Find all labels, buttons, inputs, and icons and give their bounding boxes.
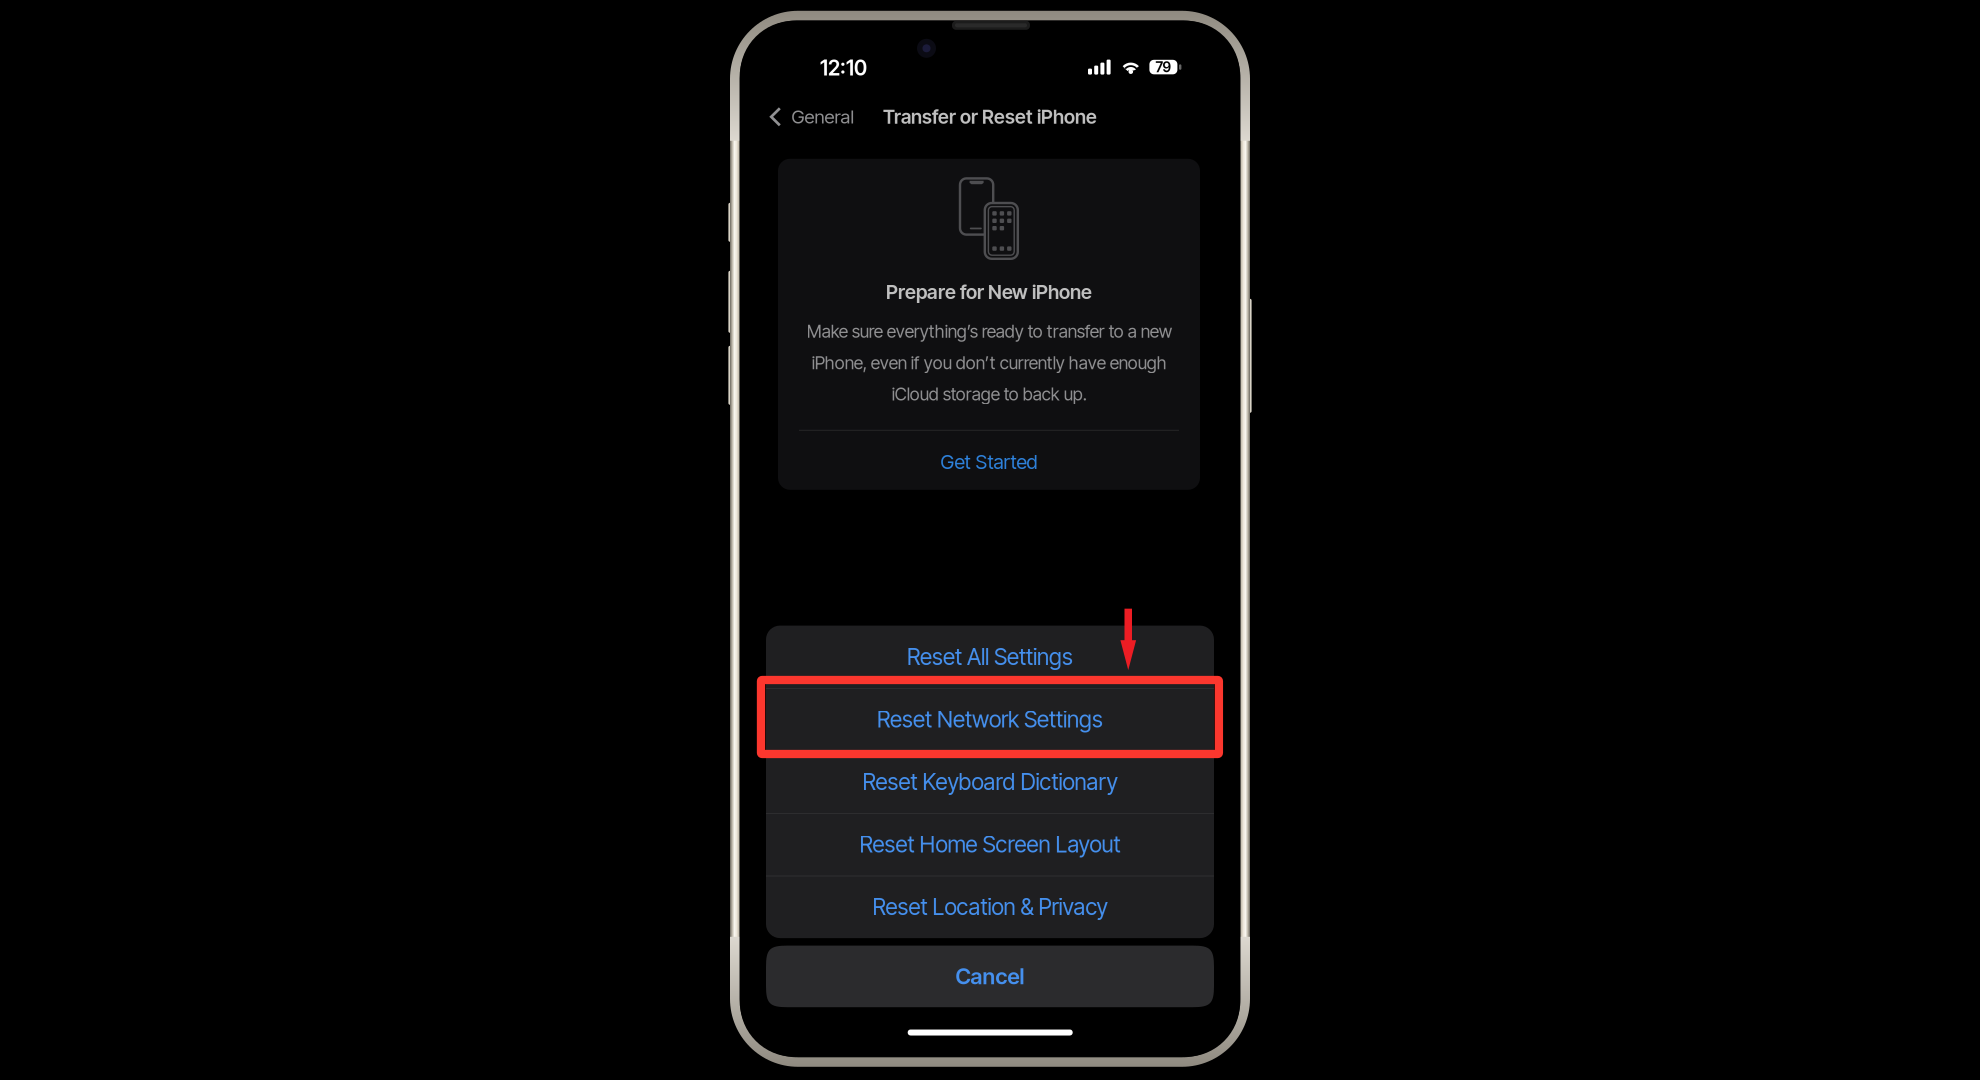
- staticText: Transfer or Reset iPhone: [883, 105, 1097, 128]
- staticText: General: [791, 105, 854, 128]
- staticText: Make sure everything’s ready to transfer…: [806, 321, 1171, 405]
- button[interactable]: Reset All Settings: [766, 626, 1214, 688]
- button[interactable]: Get Started: [778, 432, 1200, 492]
- staticText: Reset Network Settings: [877, 706, 1103, 733]
- staticText: Reset Home Screen Layout: [859, 831, 1120, 858]
- button[interactable]: Reset Home Screen Layout: [766, 813, 1214, 876]
- button[interactable]: Reset Location & Privacy: [766, 876, 1214, 938]
- staticText: 12:10: [820, 55, 867, 80]
- staticText: Cancel: [955, 963, 1024, 990]
- staticText: Reset Keyboard Dictionary: [862, 768, 1117, 795]
- staticText: Reset Location & Privacy: [872, 893, 1107, 920]
- button[interactable]: Reset Network Settings: [766, 688, 1214, 751]
- button[interactable]: Cancel: [766, 946, 1214, 1007]
- button[interactable]: Back to General: [740, 97, 866, 137]
- staticText: Get Started: [940, 450, 1037, 474]
- button[interactable]: Reset Keyboard Dictionary: [766, 751, 1214, 813]
- staticText: 79: [1155, 59, 1171, 75]
- staticText: Prepare for New iPhone: [886, 280, 1092, 304]
- staticText: Reset All Settings: [907, 643, 1073, 670]
